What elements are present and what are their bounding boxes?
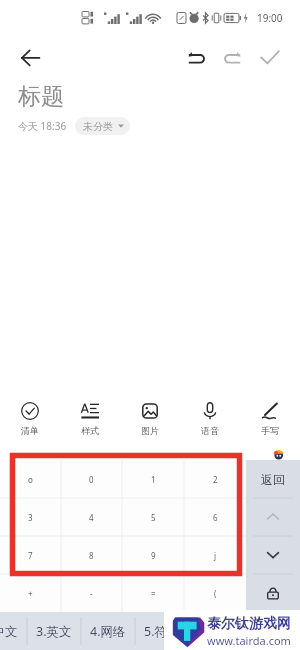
staticText: 泰尔钛游戏网	[207, 615, 291, 633]
button[interactable]: 0	[61, 460, 122, 498]
button[interactable]: 8	[61, 536, 122, 574]
button[interactable]: 4	[61, 498, 122, 536]
staticText: 7	[28, 550, 33, 561]
staticText: 6.数字	[198, 623, 234, 640]
button[interactable]: Page up	[246, 498, 300, 536]
button[interactable]: 6	[184, 498, 246, 536]
staticText: 6	[213, 512, 218, 523]
other: Lock	[265, 585, 281, 601]
staticText: 样式	[81, 425, 99, 436]
staticText: o	[28, 474, 33, 485]
staticText: -	[90, 588, 93, 599]
staticText: 清单	[21, 425, 39, 436]
staticText: 3.英文	[36, 623, 72, 640]
staticText: j	[214, 550, 217, 561]
staticText: 5.符号	[144, 623, 180, 640]
staticText: 0	[89, 474, 94, 485]
staticText: 2	[213, 474, 218, 485]
button[interactable]: o	[0, 460, 61, 498]
button[interactable]: Input method logo	[273, 448, 284, 459]
staticText: 图片	[141, 425, 159, 436]
button[interactable]: 3	[0, 498, 61, 536]
staticText: 1	[151, 474, 156, 485]
button[interactable]: 2	[184, 460, 246, 498]
button[interactable]: 7	[0, 536, 61, 574]
staticText: 标题	[18, 82, 64, 111]
staticText: 19:00	[257, 11, 283, 25]
staticText: 5	[151, 512, 156, 523]
staticText: 8	[89, 550, 94, 561]
staticText: 手写	[261, 425, 279, 436]
staticText: 7.表情	[243, 614, 273, 648]
staticText: =	[151, 588, 156, 599]
button[interactable]: -	[61, 574, 122, 612]
button[interactable]: 语音	[180, 396, 240, 441]
button[interactable]: (	[184, 574, 246, 612]
button[interactable]: Done	[251, 39, 288, 76]
staticText: 4	[89, 512, 94, 523]
button[interactable]: 手写	[240, 396, 300, 441]
staticText: 3	[28, 512, 33, 523]
button[interactable]: 3.英文	[27, 612, 81, 650]
button[interactable]: 1	[122, 460, 184, 498]
staticText: 今天 18:36	[18, 119, 67, 133]
button[interactable]: Back	[12, 39, 48, 75]
button[interactable]: =	[122, 574, 184, 612]
button[interactable]: 返回	[246, 460, 300, 498]
button[interactable]: Redo	[214, 39, 251, 76]
button[interactable]: 样式	[60, 396, 120, 441]
button[interactable]: 图片	[120, 396, 180, 441]
staticText: 9	[151, 550, 156, 561]
button[interactable]: Lock	[246, 574, 300, 612]
staticText: 语音	[201, 425, 219, 436]
button[interactable]: 6.数字	[189, 612, 243, 650]
button[interactable]: +	[0, 574, 61, 612]
button[interactable]: 5.符号	[135, 612, 189, 650]
other: Page down	[265, 547, 281, 563]
button[interactable]: 4.网络	[81, 612, 135, 650]
staticText: www.tairda.com	[207, 633, 291, 648]
button[interactable]: 7.表情	[243, 612, 273, 650]
staticText: 4.网络	[90, 623, 126, 640]
other: Page up	[265, 509, 281, 525]
staticText: +	[28, 588, 33, 599]
staticText: (	[214, 588, 217, 599]
button[interactable]: 9	[122, 536, 184, 574]
staticText: 返回	[261, 472, 285, 487]
button[interactable]: Undo	[177, 39, 214, 76]
staticText: 2.中文	[0, 623, 18, 640]
button[interactable]: 未分类	[75, 117, 130, 135]
button[interactable]: 5	[122, 498, 184, 536]
button[interactable]: 清单	[0, 396, 60, 441]
button[interactable]: 2.中文	[0, 612, 27, 650]
button[interactable]: j	[184, 536, 246, 574]
staticText: 未分类	[83, 120, 113, 133]
button[interactable]: Page down	[246, 536, 300, 574]
